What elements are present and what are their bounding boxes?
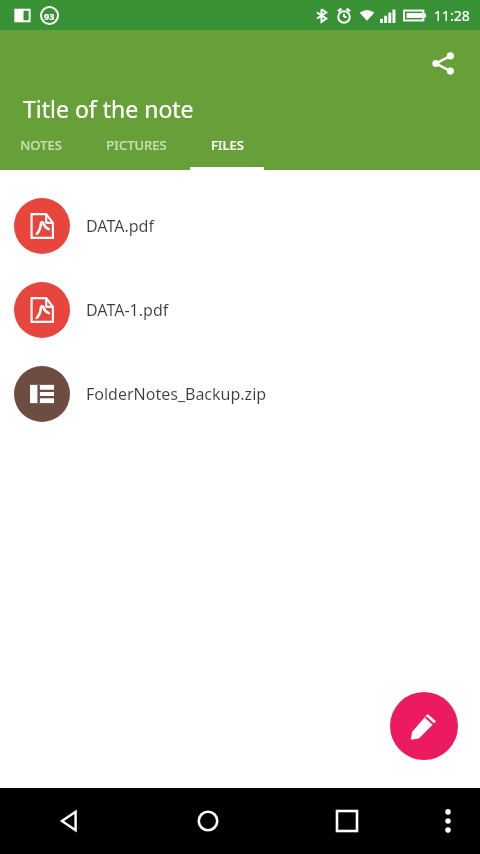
- staticText: DATA-1.pdf: [86, 299, 169, 321]
- staticText: FILES: [211, 136, 244, 154]
- staticText: FolderNotes_Backup.zip: [86, 383, 267, 405]
- button[interactable]: FolderNotes_Backup.zip: [0, 352, 480, 436]
- button[interactable]: DATA.pdf: [0, 184, 480, 268]
- button[interactable]: Back: [0, 788, 138, 854]
- button[interactable]: Edit note: [390, 692, 458, 760]
- button[interactable]: Share: [420, 40, 466, 86]
- button[interactable]: More options: [416, 788, 480, 854]
- staticText: PICTURES: [106, 136, 167, 154]
- staticText: 11:28: [434, 6, 470, 25]
- button[interactable]: DATA-1.pdf: [0, 268, 480, 352]
- button[interactable]: FILES: [190, 130, 264, 170]
- button[interactable]: NOTES: [0, 130, 82, 170]
- button[interactable]: PICTURES: [82, 130, 190, 170]
- staticText: DATA.pdf: [86, 215, 154, 237]
- staticText: Title of the note: [23, 93, 194, 124]
- staticText: NOTES: [20, 136, 62, 154]
- button[interactable]: Home: [138, 788, 277, 854]
- staticText: 93: [44, 10, 55, 22]
- button[interactable]: Recents: [277, 788, 416, 854]
